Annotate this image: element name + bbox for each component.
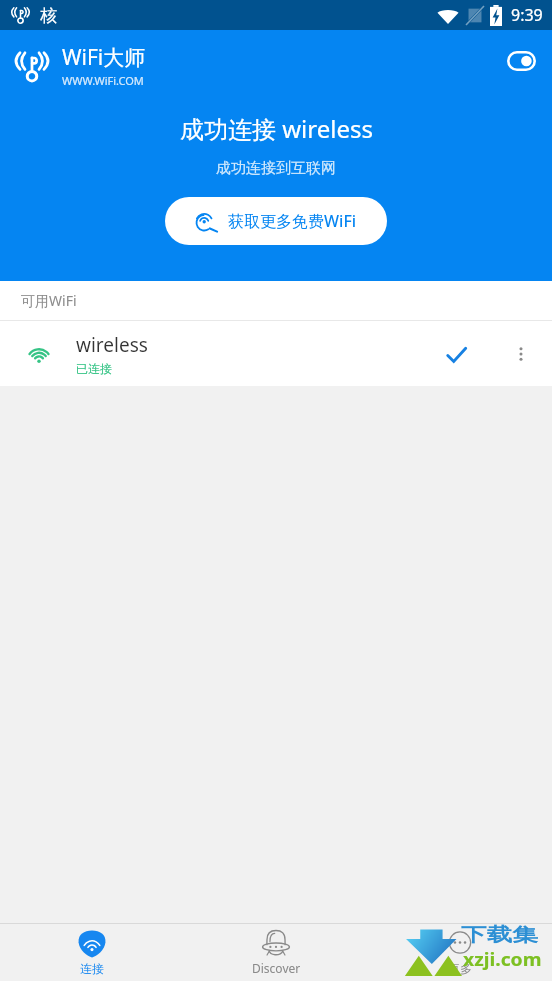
staticText: 9:39: [511, 4, 543, 26]
staticText: 连接: [80, 961, 104, 976]
staticText: WWW.WiFi.COM: [62, 73, 144, 88]
staticText: wireless: [76, 332, 148, 358]
button[interactable]: More options: [503, 336, 539, 372]
staticText: 可用WiFi: [21, 291, 77, 310]
other: Connected: [435, 333, 477, 375]
staticText: Discover: [252, 960, 301, 976]
staticText: WiFi大师: [62, 43, 146, 72]
button[interactable]: WiFi toggle: [500, 44, 542, 78]
button[interactable]: wireless: [0, 321, 552, 386]
staticText: 获取更多免费WiFi: [228, 210, 357, 232]
staticText: 成功连接到互联网: [216, 159, 336, 178]
button[interactable]: 更多: [368, 924, 552, 981]
button[interactable]: Discover: [184, 924, 368, 981]
staticText: xzji.com: [463, 947, 542, 972]
button[interactable]: 连接: [0, 924, 184, 981]
staticText: 已连接: [76, 361, 112, 376]
button[interactable]: 获取更多免费WiFi: [165, 197, 387, 245]
staticText: 下载集: [461, 923, 538, 947]
staticText: 成功连接 wireless: [180, 112, 373, 145]
staticText: 核: [40, 5, 57, 26]
staticText: 更多: [448, 961, 472, 976]
